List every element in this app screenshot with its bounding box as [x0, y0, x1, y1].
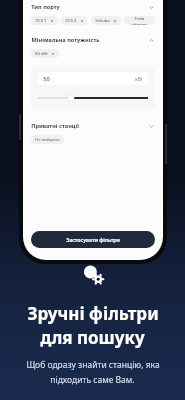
button[interactable]: [38, 94, 148, 102]
staticText: Tesla charger: [128, 16, 151, 25]
button[interactable]: Застосувати фільтри: [31, 231, 155, 248]
staticText: для пошуку: [40, 326, 145, 349]
other: Search filters: [80, 262, 106, 288]
button[interactable]: Приватні станції: [31, 121, 155, 131]
staticText: Не вибрано: [35, 137, 60, 143]
staticText: 50 кВт: [35, 51, 48, 57]
button[interactable]: Не вибрано: [31, 135, 64, 144]
staticText: Тип порту: [31, 3, 60, 11]
button[interactable]: CCS 1: [31, 16, 58, 25]
staticText: Щоб одразу знайти станцію, яка: [26, 359, 160, 371]
staticText: Мінімальна потужність: [31, 36, 100, 44]
button[interactable]: Мінімальна потужність: [31, 35, 155, 45]
staticText: Застосувати фільтри: [66, 236, 120, 243]
staticText: CCS 1: [35, 18, 47, 24]
staticText: 50: [43, 75, 50, 82]
button[interactable]: Schuko: [91, 16, 121, 25]
staticText: Приватні станції: [31, 122, 79, 130]
staticText: CCS 2: [65, 18, 77, 24]
button[interactable]: Тип порту: [31, 2, 155, 12]
button[interactable]: Tesla charger: [124, 16, 155, 25]
button[interactable]: CCS 2: [61, 16, 88, 25]
button[interactable]: 50 кВт: [31, 49, 59, 58]
staticText: кВт: [135, 76, 143, 82]
button[interactable]: 50: [38, 72, 148, 85]
staticText: Зручні фільтри: [27, 302, 159, 325]
staticText: підходить саме Вам.: [50, 374, 135, 386]
staticText: Schuko: [95, 18, 110, 24]
